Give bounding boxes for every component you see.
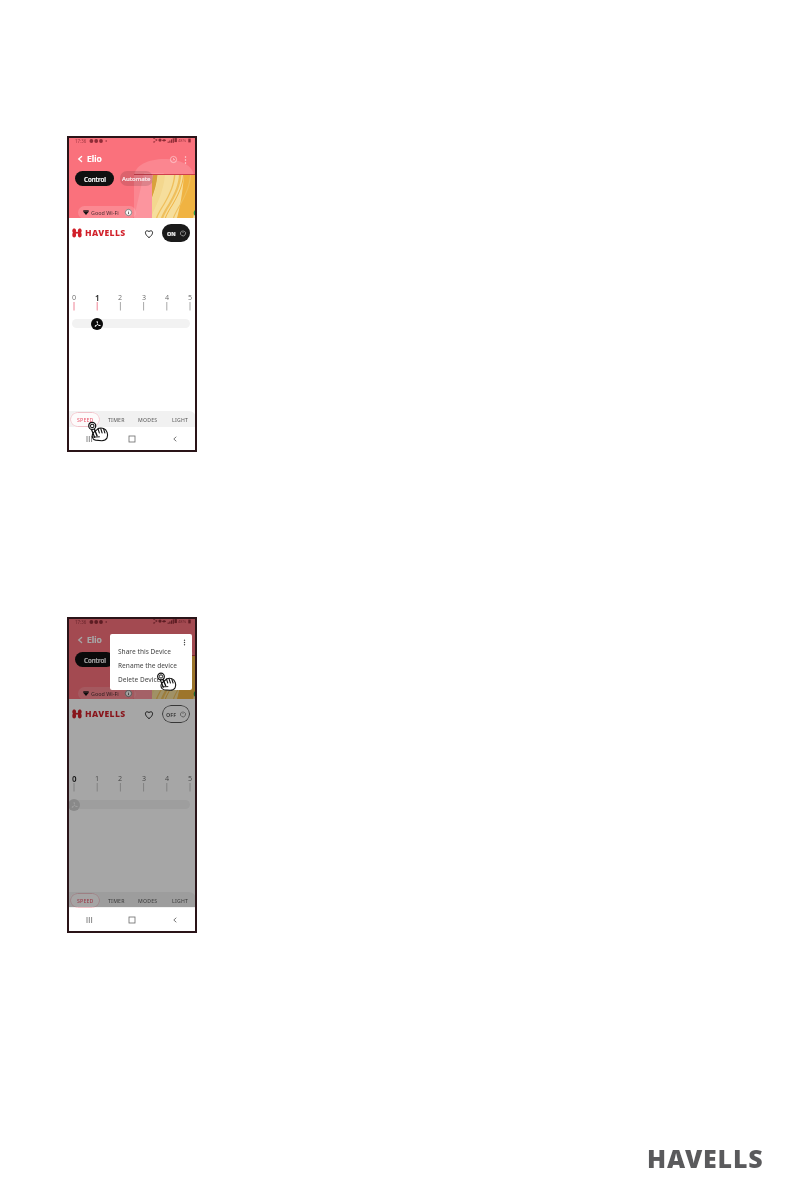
staticText: 17:36: [75, 138, 87, 144]
staticText: Elio: [87, 634, 102, 646]
button[interactable]: ON: [162, 224, 190, 242]
button[interactable]: Delete Device: [118, 672, 192, 686]
staticText: Automate: [122, 175, 151, 183]
button[interactable]: Control: [75, 652, 114, 667]
button[interactable]: SPEED: [70, 893, 100, 908]
staticText: 17:36: [75, 619, 87, 625]
button[interactable]: TIMER: [101, 892, 132, 908]
button[interactable]: TIMER: [101, 411, 132, 427]
button[interactable]: More options: [181, 636, 190, 645]
staticText: Good Wi-Fi: [91, 209, 119, 216]
staticText: 48%: [178, 138, 187, 144]
button[interactable]: Home: [110, 908, 153, 932]
button[interactable]: More options: [181, 638, 188, 647]
staticText: Good Wi-Fi: [91, 690, 119, 697]
staticText: Automate: [122, 656, 151, 664]
button[interactable]: LIGHT: [164, 411, 196, 427]
staticText: 5: [188, 292, 193, 302]
staticText: TIMER: [108, 897, 125, 904]
staticText: LIGHT: [172, 416, 189, 423]
button[interactable]: Favourite: [143, 227, 155, 239]
staticText: MODES: [138, 897, 158, 904]
button[interactable]: Speed slider: [91, 318, 103, 330]
staticText: Elio: [87, 153, 102, 165]
button[interactable]: Automate: [120, 171, 153, 186]
staticText: 4: [165, 773, 170, 783]
button[interactable]: OFF: [162, 705, 190, 723]
staticText: 0: [72, 292, 77, 302]
button[interactable]: History: [169, 155, 178, 164]
staticText: SPEED: [77, 416, 94, 423]
staticText: ON: [167, 230, 176, 237]
staticText: Control: [84, 175, 106, 183]
button[interactable]: Good Wi-Fi: [78, 206, 136, 219]
staticText: 5: [188, 773, 193, 783]
button[interactable]: MODES: [132, 892, 164, 908]
button[interactable]: Back: [76, 636, 84, 644]
button[interactable]: Automate: [120, 652, 153, 667]
staticText: 48%: [178, 619, 187, 625]
button[interactable]: Back: [153, 908, 196, 932]
staticText: 1: [95, 292, 100, 303]
button[interactable]: Control: [75, 171, 114, 186]
button[interactable]: Good Wi-Fi: [78, 687, 136, 700]
button[interactable]: Home: [110, 427, 153, 451]
staticText: OFF: [166, 711, 177, 718]
staticText: Share this Device: [118, 647, 172, 656]
staticText: Control: [84, 656, 106, 664]
button[interactable]: Recents: [68, 427, 110, 451]
button[interactable]: More options: [181, 155, 190, 164]
staticText: 1: [95, 773, 100, 783]
staticText: HAVELLS: [85, 227, 126, 239]
staticText: 3: [142, 773, 147, 783]
staticText: 4: [165, 292, 170, 302]
staticText: MODES: [138, 416, 158, 423]
button[interactable]: LIGHT: [164, 892, 196, 908]
staticText: 2: [118, 292, 123, 302]
button[interactable]: Share this Device: [118, 644, 192, 658]
button[interactable]: Rename the device: [118, 658, 192, 672]
button[interactable]: Back: [76, 155, 84, 163]
button[interactable]: Recents: [68, 908, 110, 932]
button[interactable]: Back: [153, 427, 196, 451]
button[interactable]: SPEED: [70, 412, 100, 427]
staticText: 3: [142, 292, 147, 302]
staticText: LIGHT: [172, 897, 189, 904]
staticText: HAVELLS: [647, 1141, 764, 1175]
staticText: TIMER: [108, 416, 125, 423]
staticText: Rename the device: [118, 661, 177, 670]
button[interactable]: Speed slider: [68, 799, 80, 811]
button[interactable]: Favourite: [143, 708, 155, 720]
staticText: Delete Device: [118, 675, 161, 684]
staticText: SPEED: [77, 897, 94, 904]
staticText: HAVELLS: [85, 708, 126, 720]
staticText: 2: [118, 773, 123, 783]
button[interactable]: MODES: [132, 411, 164, 427]
staticText: 0: [72, 773, 77, 784]
